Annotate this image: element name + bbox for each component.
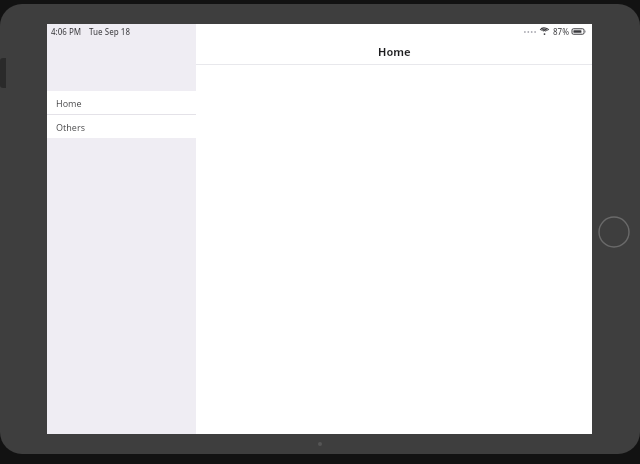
button[interactable]: Others	[47, 115, 196, 138]
staticText: Home	[378, 44, 411, 59]
button[interactable]: Home	[47, 91, 196, 114]
button[interactable]: Home button	[598, 216, 630, 248]
staticText: Tue Sep 18	[89, 26, 130, 37]
staticText: 87%	[553, 26, 569, 37]
staticText: Home	[56, 97, 82, 109]
staticText: 4:06 PM	[51, 26, 82, 37]
staticText: Others	[56, 121, 85, 133]
